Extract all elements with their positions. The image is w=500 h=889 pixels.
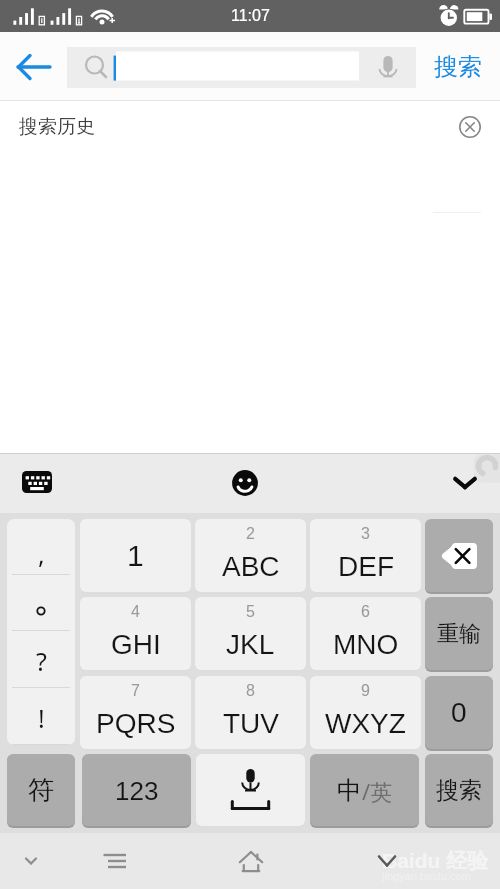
button[interactable]: !	[7, 688, 75, 745]
staticText: 123	[115, 776, 159, 805]
button[interactable]: Voice input	[196, 754, 305, 826]
staticText: ?	[36, 644, 47, 678]
button[interactable]: Hide keyboard	[435, 453, 494, 512]
staticText: 11:07	[231, 7, 270, 25]
button[interactable]: 符	[7, 754, 75, 826]
button[interactable]: Back	[0, 32, 67, 101]
staticText: 1	[127, 539, 144, 573]
staticText: ,	[38, 537, 45, 571]
button[interactable]: Emoji	[215, 453, 274, 512]
staticText: MNO	[333, 629, 399, 660]
staticText: TUV	[223, 708, 279, 739]
button[interactable]: ?	[7, 631, 75, 688]
staticText: 搜索历史	[19, 115, 95, 139]
button[interactable]	[67, 47, 416, 88]
button[interactable]	[7, 575, 75, 631]
button[interactable]: 5	[195, 597, 306, 670]
staticText: 3	[361, 525, 370, 543]
staticText: GHI	[111, 629, 161, 660]
button[interactable]: Back	[364, 838, 409, 883]
button[interactable]: 8	[195, 676, 306, 749]
staticText: 0	[451, 697, 467, 728]
staticText: WXYZ	[325, 708, 406, 739]
button[interactable]: 2	[195, 519, 306, 592]
staticText: 2	[246, 525, 255, 543]
button[interactable]: 4	[80, 597, 191, 670]
staticText: 9	[361, 682, 370, 700]
button[interactable]: 6	[310, 597, 421, 670]
button[interactable]: 中	[310, 754, 419, 826]
staticText: 7	[131, 682, 140, 700]
button[interactable]: 3	[310, 519, 421, 592]
button[interactable]: Backspace	[425, 519, 493, 592]
staticText: 搜索	[434, 52, 482, 82]
staticText: 重输	[437, 620, 481, 648]
staticText: Baidu 经验	[382, 848, 489, 874]
staticText: 中	[337, 775, 362, 806]
button[interactable]: Collapse keyboard	[8, 838, 53, 883]
button[interactable]: Clear history	[446, 103, 494, 151]
staticText: 4	[131, 603, 140, 621]
button[interactable]: Home	[228, 838, 273, 883]
staticText: DEF	[338, 551, 394, 582]
staticText: JKL	[226, 629, 275, 660]
staticText: /英	[362, 776, 393, 806]
button[interactable]: 7	[80, 676, 191, 749]
staticText: !	[38, 701, 45, 735]
button[interactable]: 1	[80, 519, 191, 592]
staticText: 符	[28, 774, 54, 807]
button[interactable]: Recent apps	[92, 838, 137, 883]
button[interactable]: 123	[82, 754, 191, 826]
button[interactable]: 重输	[425, 597, 493, 670]
button[interactable]: Keyboard layout	[8, 453, 66, 511]
button[interactable]: 9	[310, 676, 421, 749]
staticText: 6	[361, 603, 370, 621]
button[interactable]: ,	[7, 519, 75, 575]
staticText: 搜索	[436, 776, 482, 805]
button[interactable]: 0	[425, 676, 493, 749]
button[interactable]: 搜索	[425, 754, 493, 826]
staticText: 5	[246, 603, 255, 621]
button[interactable]: 搜索	[416, 32, 500, 101]
staticText: 8	[246, 682, 255, 700]
staticText: ABC	[222, 551, 280, 582]
staticText: PQRS	[96, 708, 176, 739]
